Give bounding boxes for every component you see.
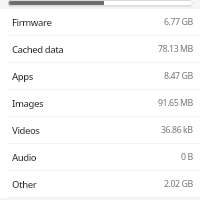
button[interactable]: Cached data xyxy=(0,36,200,63)
staticText: Firmware xyxy=(12,16,52,29)
staticText: Apps xyxy=(12,70,33,83)
staticText: 91.65 MB xyxy=(158,97,193,109)
staticText: 36.86 kB xyxy=(161,124,193,136)
button[interactable]: Firmware xyxy=(0,9,200,36)
button[interactable]: Audio xyxy=(0,144,200,171)
staticText: Audio xyxy=(12,151,37,164)
button[interactable]: Images xyxy=(0,90,200,117)
staticText: 78.13 MB xyxy=(158,43,193,55)
button[interactable]: Other xyxy=(0,171,200,198)
staticText: 2.02 GB xyxy=(164,178,193,190)
staticText: Other xyxy=(12,178,37,191)
staticText: 6.77 GB xyxy=(164,16,193,28)
staticText: Cached data xyxy=(12,43,64,56)
button[interactable]: Videos xyxy=(0,117,200,144)
staticText: 0 B xyxy=(181,151,193,163)
staticText: 8.47 GB xyxy=(164,70,193,82)
button[interactable]: Apps xyxy=(0,63,200,90)
staticText: Images xyxy=(12,97,44,110)
staticText: Videos xyxy=(12,124,40,137)
